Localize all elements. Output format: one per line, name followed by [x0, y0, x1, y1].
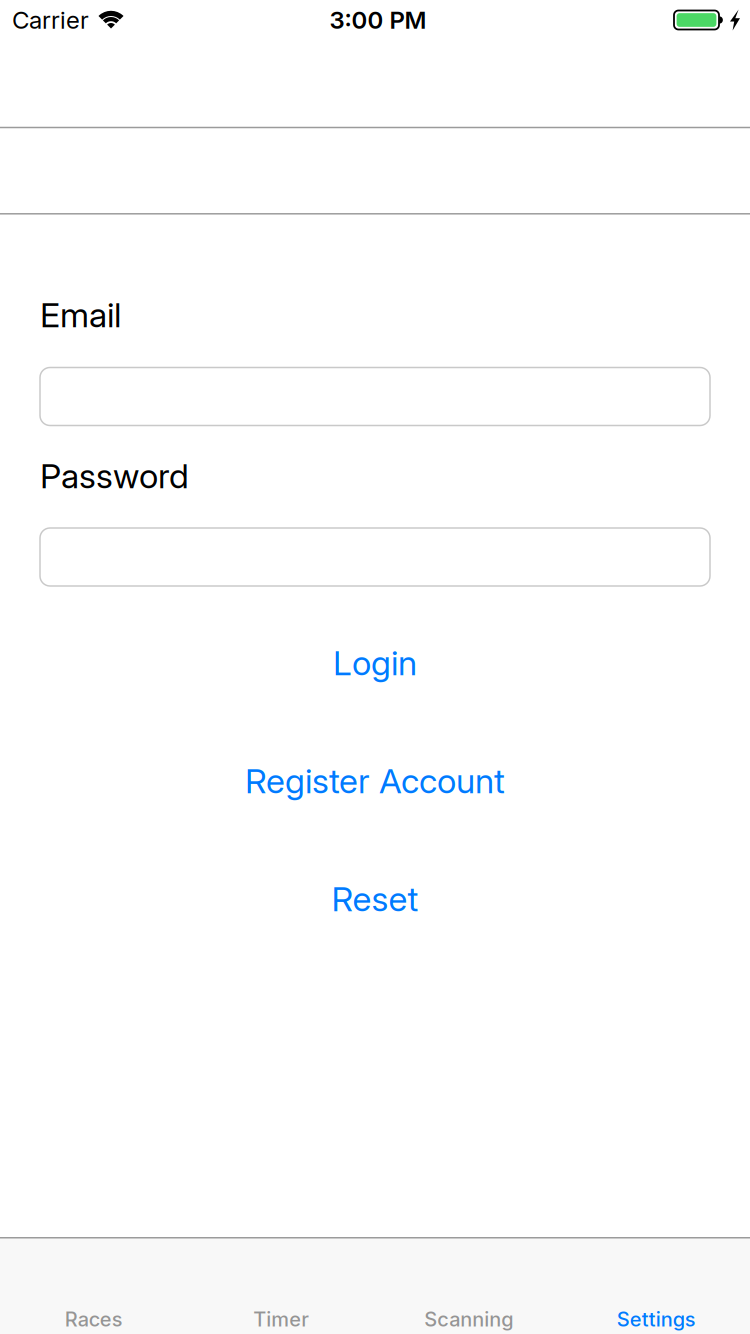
staticText: Email: [40, 295, 121, 335]
button[interactable]: Login: [313, 633, 437, 693]
staticText: 3:00 PM: [329, 6, 426, 34]
button[interactable]: Scanning: [375, 1237, 562, 1334]
button[interactable]: Settings: [562, 1237, 750, 1334]
staticText: Settings: [617, 1307, 696, 1331]
button[interactable]: Timer: [187, 1237, 375, 1334]
button[interactable]: Email: [40, 367, 710, 425]
button[interactable]: Races: [0, 1237, 187, 1334]
staticText: Login: [333, 643, 417, 683]
staticText: Reset: [331, 879, 418, 919]
staticText: Carrier: [12, 6, 89, 34]
staticText: Races: [65, 1307, 123, 1331]
staticText: Password: [40, 456, 189, 496]
staticText: Register Account: [245, 761, 505, 801]
button[interactable]: Reset: [311, 869, 438, 929]
button[interactable]: Register Account: [225, 751, 525, 811]
staticText: Timer: [253, 1307, 309, 1331]
button[interactable]: Password: [40, 528, 710, 586]
staticText: Scanning: [424, 1307, 513, 1331]
